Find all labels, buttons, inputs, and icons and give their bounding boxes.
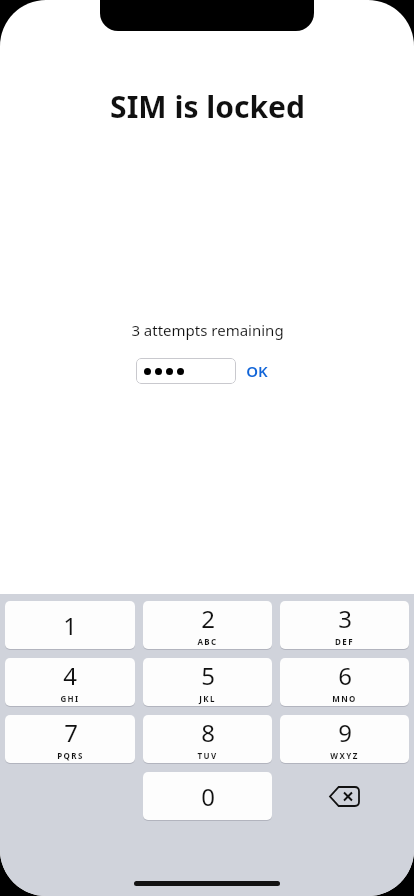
button[interactable]: SIM PIN entry xyxy=(136,358,236,384)
staticText: TUV xyxy=(197,750,218,761)
staticText: 4 xyxy=(63,659,77,692)
staticText: WXYZ xyxy=(330,750,359,761)
staticText: 8 xyxy=(201,716,215,749)
button[interactable]: 1 xyxy=(5,601,135,649)
button[interactable]: 6 xyxy=(280,658,409,706)
staticText: PQRS xyxy=(57,750,84,761)
staticText: 7 xyxy=(64,716,78,749)
button[interactable]: 3 xyxy=(280,601,409,649)
button[interactable]: 9 xyxy=(280,715,409,763)
button[interactable]: OK xyxy=(236,357,278,385)
button[interactable]: 4 xyxy=(5,658,135,706)
staticText: JKL xyxy=(199,693,216,704)
staticText: OK xyxy=(246,361,268,381)
staticText: 2 xyxy=(201,602,215,635)
button[interactable]: 8 xyxy=(143,715,272,763)
staticText: 1 xyxy=(63,609,77,642)
staticText: 5 xyxy=(201,659,215,692)
staticText: GHI xyxy=(60,693,80,704)
staticText: 6 xyxy=(338,659,352,692)
staticText: MNO xyxy=(332,693,357,704)
button[interactable]: 7 xyxy=(5,715,135,763)
button[interactable]: 2 xyxy=(143,601,272,649)
staticText: 0 xyxy=(201,780,215,813)
staticText: 3 xyxy=(338,602,352,635)
staticText: DEF xyxy=(335,636,354,647)
staticText: ABC xyxy=(197,636,218,647)
staticText: SIM is locked xyxy=(110,86,305,127)
button[interactable]: Backspace xyxy=(280,772,409,820)
staticText: 9 xyxy=(338,716,352,749)
button[interactable]: 0 xyxy=(143,772,272,820)
staticText: 3 attempts remaining xyxy=(131,320,284,340)
button[interactable]: 5 xyxy=(143,658,272,706)
